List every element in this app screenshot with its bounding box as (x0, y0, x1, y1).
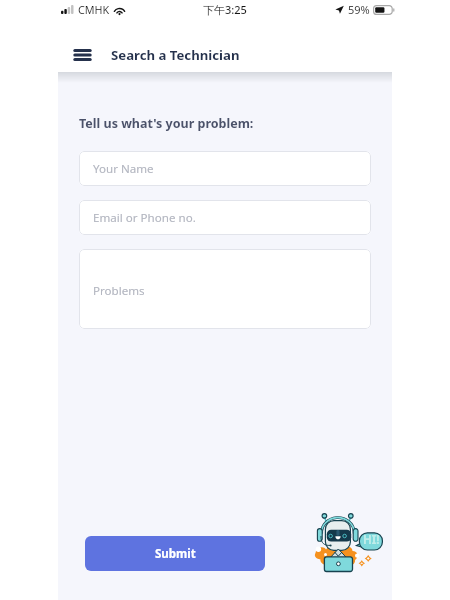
staticText: Tell us what's your problem: (79, 115, 254, 132)
button[interactable]: Menu (66, 40, 98, 70)
staticText: 59% (348, 2, 370, 17)
staticText: 下午3:25 (203, 2, 247, 17)
staticText: Search a Technician (111, 46, 240, 64)
staticText: Problems (93, 283, 145, 299)
staticText: Email or Phone no. (93, 210, 196, 226)
button[interactable]: Email or Phone no. (79, 200, 371, 235)
button[interactable]: Your Name (79, 151, 371, 186)
staticText: Submit (155, 546, 196, 562)
staticText: Your Name (93, 161, 154, 177)
button[interactable]: Problems (79, 249, 371, 329)
button[interactable]: Submit (85, 536, 265, 571)
staticText: HI! (363, 532, 380, 548)
staticText: CMHK (78, 2, 110, 17)
